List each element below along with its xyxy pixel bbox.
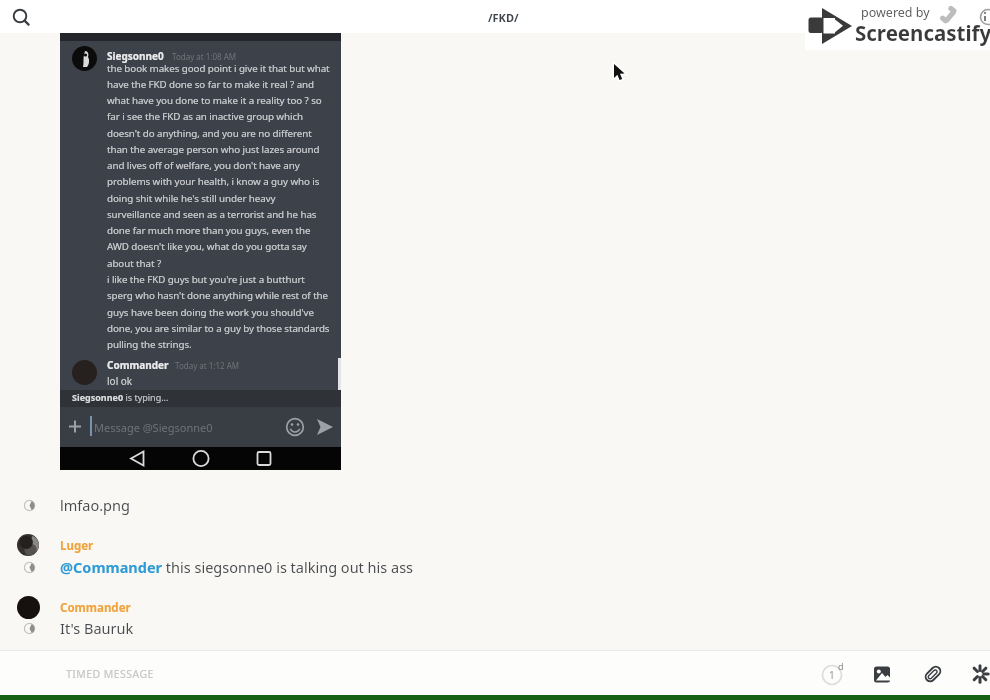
staticText: Commander: [60, 600, 131, 616]
staticText: and lives off of welfare, you don't have…: [107, 159, 300, 172]
button[interactable]: [922, 663, 944, 685]
staticText: /FKD/: [488, 10, 519, 25]
button[interactable]: [970, 664, 990, 684]
staticText: surveillance and seen as a terrorist and…: [107, 208, 317, 221]
staticText: Siegsonne0 is typing...: [72, 391, 169, 403]
staticText: done, you are similar to a guy by those …: [107, 322, 330, 335]
staticText: Luger: [60, 538, 94, 554]
staticText: what have you done to make it a reality …: [107, 94, 322, 107]
button[interactable]: [8, 4, 34, 30]
staticText: done far much more than you guys, even t…: [107, 224, 311, 237]
staticText: pulling the strings.: [107, 338, 192, 351]
staticText: It's Bauruk: [60, 618, 134, 638]
staticText: doesn't do anything, and you are no diff…: [107, 127, 312, 140]
staticText: doing shit while he's still under heavy: [107, 192, 276, 205]
button[interactable]: [0, 650, 990, 695]
button[interactable]: [872, 664, 892, 684]
button[interactable]: [820, 662, 850, 688]
button[interactable]: [17, 596, 40, 619]
staticText: AWD doesn't like you, what do you gotta …: [107, 240, 307, 253]
staticText: @Commander this siegsonne0 is talking ou…: [60, 557, 414, 577]
staticText: have the FKD done so far to make it real…: [107, 78, 315, 91]
staticText: 1: [829, 668, 835, 682]
button[interactable]: Siegsonne0: [60, 33, 341, 470]
staticText: Screencastify: [855, 19, 990, 47]
staticText: problems with your health, i know a guy …: [107, 175, 320, 188]
staticText: d: [838, 660, 844, 672]
staticText: guys have been doing the work you should…: [107, 306, 314, 319]
staticText: powered by: [861, 4, 930, 21]
staticText: TIMED MESSAGE: [66, 667, 154, 681]
staticText: than the average person who just lazes a…: [107, 143, 320, 156]
staticText: Message @Siegsonne0: [94, 420, 213, 435]
staticText: far i see the FKD as an inactive group w…: [107, 110, 304, 123]
staticText: lol ok: [107, 374, 133, 388]
staticText: Commander: [107, 358, 169, 372]
staticText: i like the FKD guys but you're just a bu…: [107, 273, 305, 286]
button[interactable]: [60, 407, 341, 447]
button[interactable]: [17, 534, 39, 556]
staticText: Today at 1:12 AM: [175, 360, 240, 371]
staticText: about that ?: [107, 257, 162, 270]
staticText: lmfao.png: [60, 495, 130, 515]
staticText: sperg who hasn't done anything while res…: [107, 289, 329, 302]
staticText: Today at 1:08 AM: [172, 51, 237, 62]
staticText: Siegsonne0: [107, 49, 164, 63]
staticText: the book makes good point i give it that…: [107, 62, 330, 75]
